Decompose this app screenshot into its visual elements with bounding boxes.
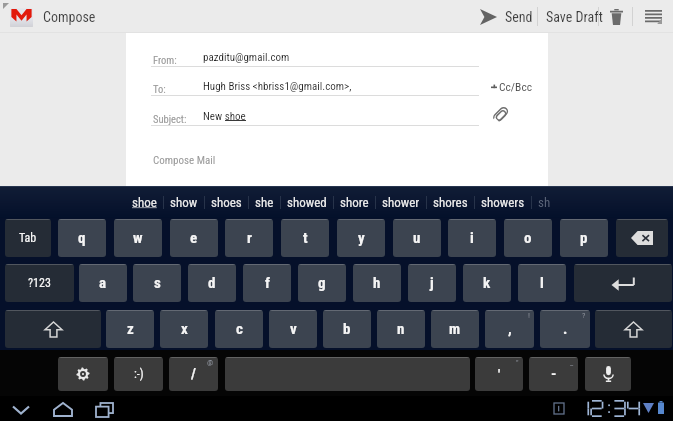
staticText: Subject: [153,113,187,125]
staticText: x [181,320,188,338]
button[interactable]: key [585,357,631,391]
button[interactable]: n [377,310,425,348]
staticText: / [191,365,196,383]
button[interactable]: key [58,357,108,391]
button[interactable]: More options [639,0,667,33]
staticText: s [154,274,161,292]
staticText: Compose [43,9,96,25]
staticText: From: [153,54,177,66]
button[interactable]: v [269,310,317,348]
button[interactable]: - [529,357,578,391]
button[interactable]: ' [475,357,523,391]
button[interactable]: f [243,264,291,302]
staticText: f [265,274,270,292]
staticText: shore [340,195,369,210]
staticText: j [430,274,434,292]
staticText: " [516,358,519,367]
button[interactable]: shower [376,186,426,218]
staticText: show [170,195,198,210]
button[interactable]: Tab [5,219,51,257]
staticText: - [551,365,557,383]
button[interactable]: shoes [205,186,248,218]
button[interactable]: shore [334,186,375,218]
button[interactable]: shores [427,186,474,218]
button[interactable]: Attach file [489,103,511,125]
staticText: _ [570,358,574,367]
button[interactable]: p [560,219,608,257]
button[interactable]: :-) [114,357,163,391]
button[interactable]: sh [532,186,557,218]
staticText: e [190,229,198,247]
button[interactable]: Save Draft [541,0,608,33]
button[interactable]: k [463,264,511,302]
button[interactable]: o [504,219,552,257]
button[interactable]: she [249,186,280,218]
button[interactable]: key [225,357,470,391]
button[interactable]: x [160,310,208,348]
button[interactable]: key [5,310,101,348]
button[interactable]: r [225,219,273,257]
button[interactable]: Cc/Bcc [491,80,533,93]
staticText: ' [498,367,501,382]
button[interactable]: c [215,310,263,348]
button[interactable]: q [58,219,106,257]
button[interactable]: ?123 [5,264,74,302]
button[interactable]: u [393,219,441,257]
button[interactable]: m [431,310,479,348]
button[interactable]: j [408,264,456,302]
staticText: shores [433,195,468,210]
staticText: o [524,229,532,247]
button[interactable]: d [188,264,236,302]
button[interactable]: s [133,264,181,302]
staticText: shoe [132,195,157,210]
button[interactable]: key [616,219,668,257]
staticText: Save Draft [546,9,603,25]
staticText: shower [382,195,420,210]
button[interactable]: a [79,264,127,302]
button[interactable]: e [170,219,218,257]
staticText: showers [481,195,525,210]
button[interactable]: , [485,310,534,348]
staticText: sh [538,195,551,210]
button[interactable]: Send [472,0,542,33]
staticText: p [580,229,588,247]
staticText: shoes [211,195,242,210]
button[interactable]: key [595,310,672,348]
button[interactable]: z [106,310,154,348]
staticText: , [508,320,512,338]
button[interactable]: w [114,219,162,257]
button[interactable]: t [281,219,329,257]
button[interactable]: y [337,219,385,257]
button[interactable]: key [574,264,672,302]
staticText: d [208,274,216,292]
button[interactable]: showers [475,186,531,218]
button[interactable]: g [298,264,346,302]
staticText: Hugh Briss <hbriss1@gmail.com>, [203,80,352,93]
staticText: b [343,320,351,338]
button[interactable]: Compose [0,0,96,33]
button[interactable]: show [164,186,204,218]
staticText: c [236,320,243,338]
staticText: To: [153,83,166,95]
staticText: l [540,274,544,292]
button[interactable]: i [448,219,496,257]
button[interactable]: Recent apps [94,399,115,420]
button[interactable]: . [540,310,590,348]
staticText: a [99,274,107,292]
staticText: m [449,320,461,338]
staticText: z [127,320,134,338]
staticText: Cc/Bcc [499,80,533,93]
button[interactable]: l [518,264,566,302]
button[interactable]: h [353,264,401,302]
button[interactable]: shoe [126,186,163,218]
staticText: ?123 [28,276,51,290]
button[interactable]: Discard [602,0,630,33]
staticText: :-) [134,367,144,381]
staticText: Compose Mail [153,154,216,167]
button[interactable]: / [169,357,218,391]
button[interactable]: showed [281,186,333,218]
staticText: y [358,229,365,247]
button[interactable]: Hide keyboard [10,399,31,420]
button[interactable]: b [323,310,371,348]
button[interactable]: Home [52,399,73,420]
